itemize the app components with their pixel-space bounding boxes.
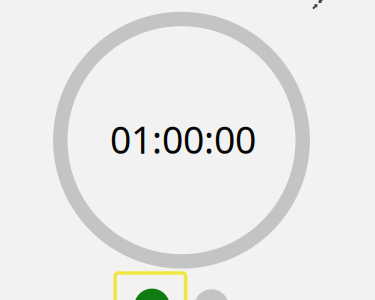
button[interactable]: Minimize xyxy=(312,0,324,9)
button[interactable]: Stop xyxy=(174,271,248,300)
button[interactable]: Start xyxy=(115,271,189,300)
staticText: 01:00:00 xyxy=(110,114,256,164)
